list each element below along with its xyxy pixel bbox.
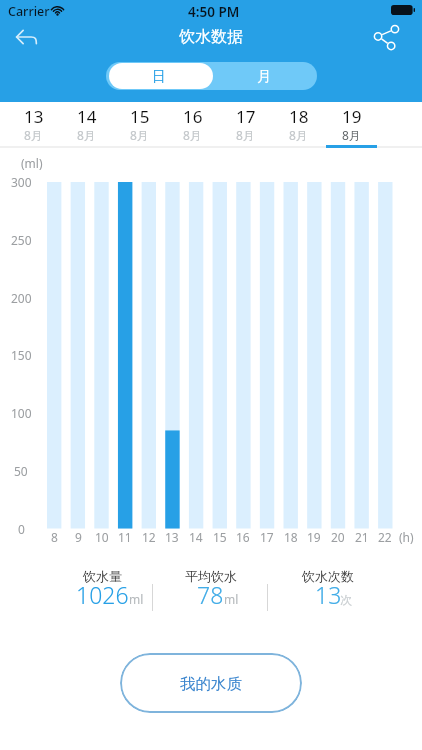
staticText: 16 [236,529,250,545]
staticText: 150 [11,347,32,363]
staticText: 8月 [236,127,255,143]
staticText: 16 [183,105,203,128]
staticText: 21 [355,529,369,545]
staticText: 15 [213,529,227,545]
button[interactable]: 日 [109,63,213,89]
staticText: 200 [11,290,32,306]
staticText: 10 [95,529,109,545]
button[interactable]: 平均饮水 [157,568,265,616]
button[interactable]: 我的水质 [120,653,302,713]
button[interactable]: 16 [166,102,219,147]
staticText: 300 [11,174,32,190]
staticText: 饮水数据 [179,27,243,47]
button[interactable]: 饮水量 [48,568,156,616]
staticText: 1026 [76,579,129,610]
staticText: 饮水次数 [302,568,354,584]
staticText: 9 [75,529,82,545]
staticText: 饮水量 [83,568,122,584]
staticText: 8月 [24,127,43,143]
staticText: 50 [14,463,28,479]
staticText: 4:50 PM [188,3,240,21]
staticText: 15 [130,105,150,128]
staticText: 8月 [130,127,149,143]
staticText: (h) [399,529,414,545]
staticText: 8月 [77,127,96,143]
button[interactable]: 19 [325,102,378,147]
staticText: 19 [342,105,362,128]
staticText: 250 [11,232,32,248]
staticText: 13 [315,579,342,610]
staticText: 我的水质 [180,674,242,694]
staticText: ml [224,591,239,607]
staticText: 17 [260,529,274,545]
staticText: 18 [289,105,309,128]
staticText: 月 [257,68,271,86]
staticText: 13 [24,105,44,128]
staticText: 8月 [342,127,361,143]
staticText: 8 [51,529,58,545]
button[interactable]: 14 [60,102,113,147]
staticText: 18 [284,529,298,545]
button[interactable]: Back [6,18,46,56]
staticText: 19 [307,529,321,545]
staticText: 78 [197,579,224,610]
staticText: ml [129,591,144,607]
staticText: 14 [77,105,97,128]
staticText: (ml) [21,155,43,171]
staticText: 12 [142,529,156,545]
staticText: 8月 [183,127,202,143]
button[interactable]: 月 [213,63,314,89]
staticText: 14 [189,529,203,545]
button[interactable]: 18 [272,102,325,147]
staticText: 0 [18,521,25,537]
staticText: Carrier [8,3,50,20]
staticText: 日 [152,68,166,86]
staticText: 次 [340,592,352,607]
button[interactable]: Share [366,18,406,56]
button[interactable]: 饮水次数 [274,568,382,616]
staticText: 11 [118,529,132,545]
staticText: 20 [331,529,345,545]
staticText: 100 [11,405,32,421]
staticText: 8月 [289,127,308,143]
staticText: 17 [236,105,256,128]
button[interactable]: 15 [113,102,166,147]
button[interactable]: 13 [7,102,60,147]
staticText: 13 [165,529,179,545]
button[interactable]: 17 [219,102,272,147]
staticText: 平均饮水 [185,568,237,584]
staticText: 22 [378,529,392,545]
